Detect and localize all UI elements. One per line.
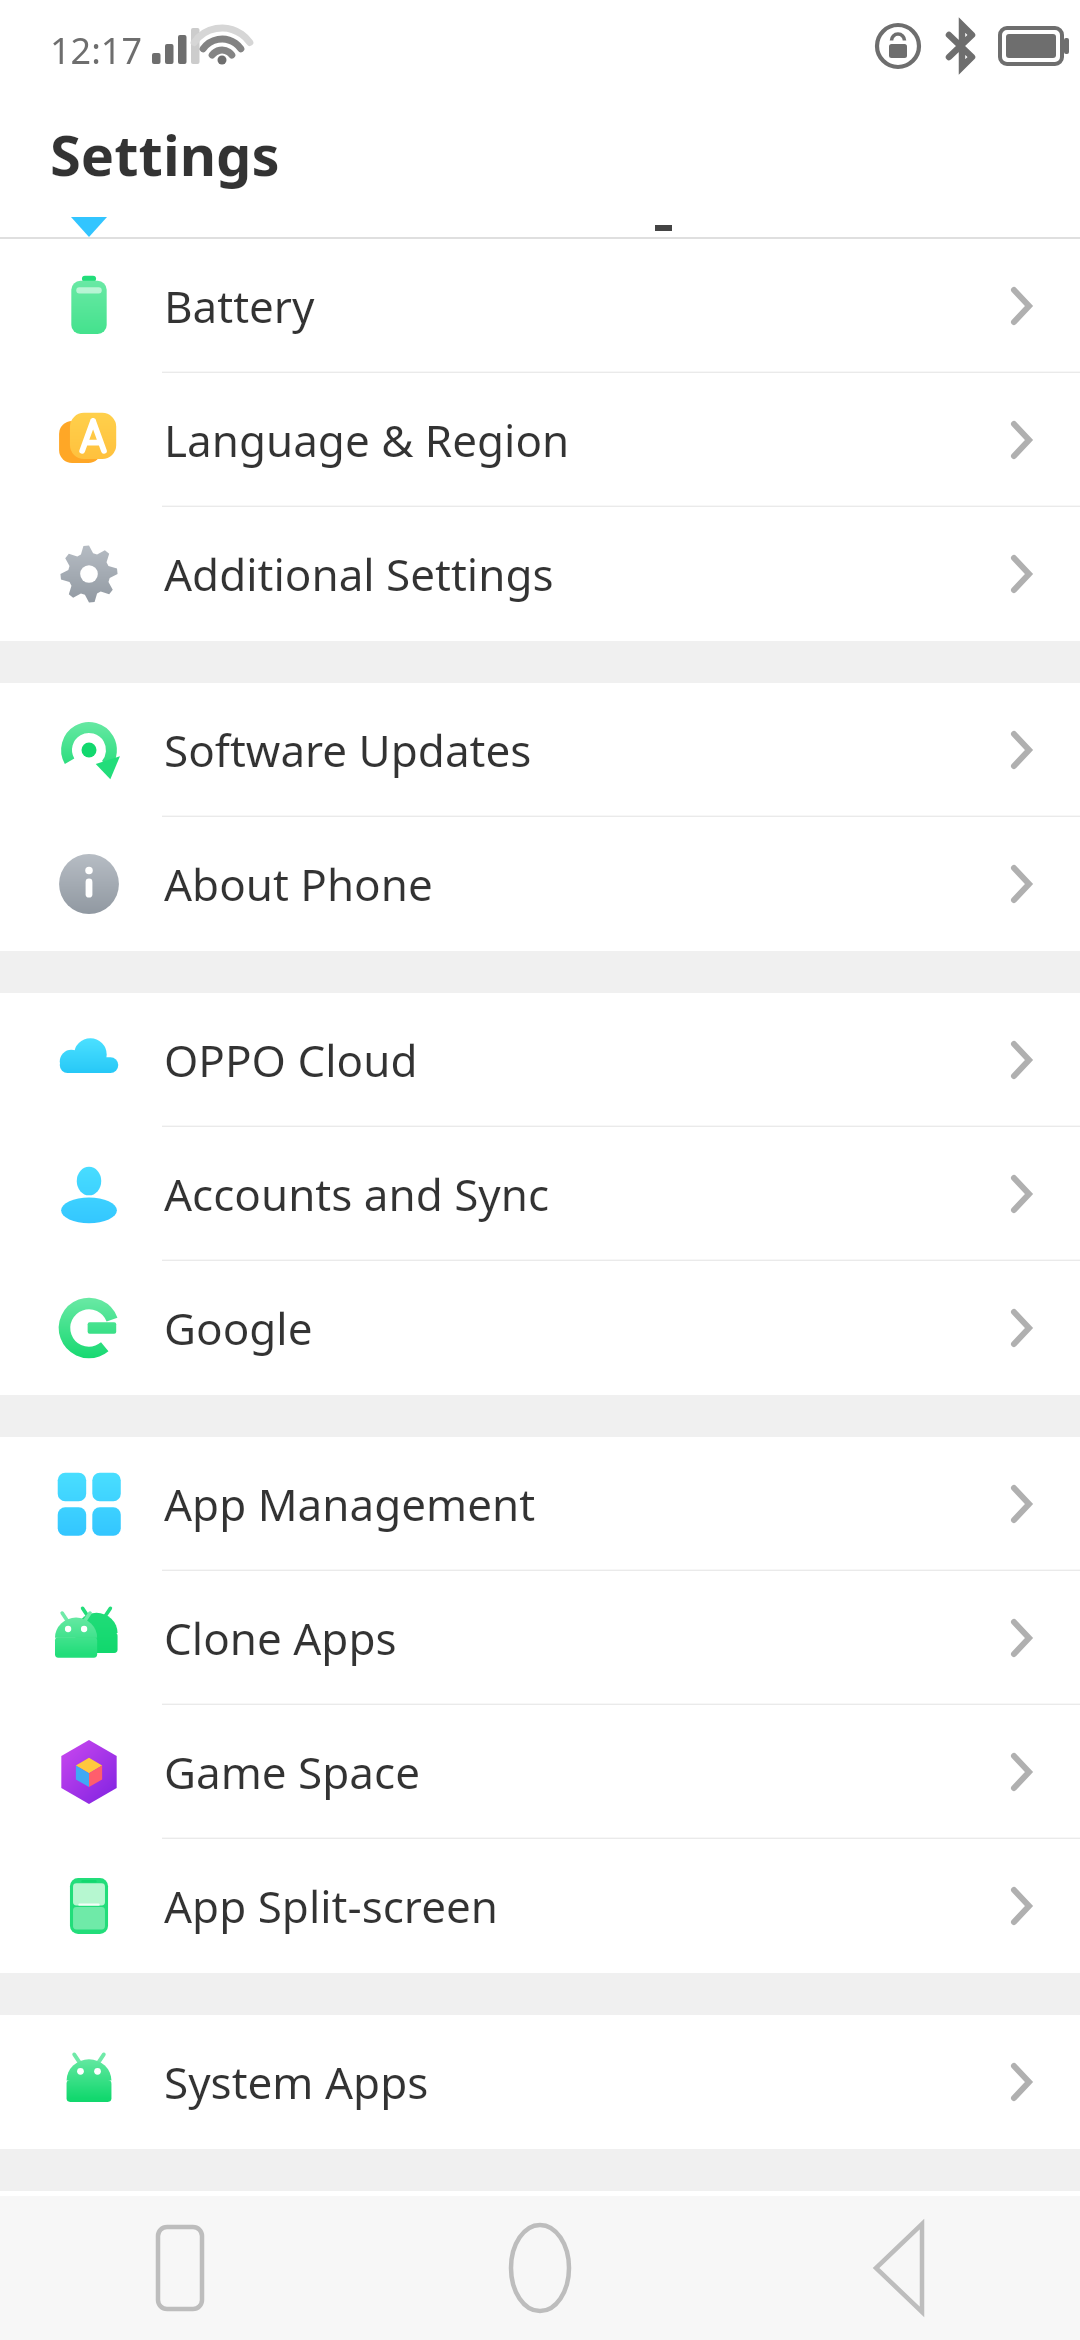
button[interactable]: OPPO Cloud (0, 993, 1080, 1127)
staticText: App Management (164, 1474, 536, 1534)
staticText: Settings (50, 116, 280, 192)
staticText: Accounts and Sync (164, 1164, 550, 1224)
button[interactable]: Clone Apps (0, 1571, 1080, 1705)
button[interactable]: System Apps (0, 2015, 1080, 2149)
button[interactable]: Battery (0, 239, 1080, 373)
staticText: Google (164, 1298, 313, 1358)
button[interactable]: Additional Settings (0, 507, 1080, 641)
button[interactable]: About Phone (0, 817, 1080, 951)
staticText: Software Updates (164, 720, 532, 780)
button[interactable]: Google (0, 1261, 1080, 1395)
button[interactable]: Back (720, 2196, 1080, 2340)
staticText: 12:17 (50, 26, 143, 75)
staticText: Battery (164, 276, 315, 336)
staticText: Game Space (164, 1742, 420, 1802)
staticText: App Split-screen (164, 1876, 498, 1936)
button[interactable]: App Management (0, 1437, 1080, 1571)
button[interactable]: Accounts and Sync (0, 1127, 1080, 1261)
staticText: Language & Region (164, 410, 570, 470)
button[interactable]: Software Updates (0, 683, 1080, 817)
button[interactable]: Language & Region (0, 373, 1080, 507)
staticText: About Phone (164, 854, 433, 914)
button[interactable]: App Split-screen (0, 1839, 1080, 1973)
staticText: OPPO Cloud (164, 1030, 418, 1090)
button[interactable]: Game Space (0, 1705, 1080, 1839)
button[interactable]: Recent apps (0, 2196, 360, 2340)
staticText: Additional Settings (164, 544, 554, 604)
staticText: Clone Apps (164, 1608, 397, 1668)
staticText: System Apps (164, 2052, 429, 2112)
button[interactable]: Home (360, 2196, 720, 2340)
